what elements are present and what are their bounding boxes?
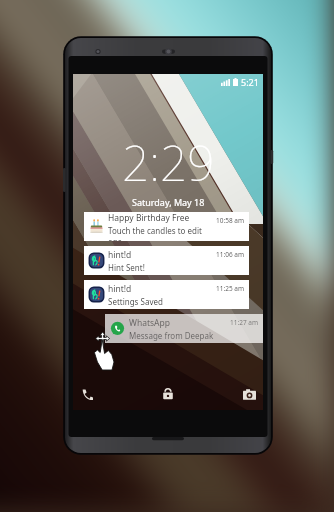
staticText: Saturday, May 18: [132, 196, 205, 208]
staticText: 11:06 am: [216, 250, 245, 259]
button[interactable]: Happy Birthday Free: [84, 212, 249, 241]
button[interactable]: Camera: [240, 385, 258, 403]
staticText: 5:21: [241, 76, 259, 88]
staticText: Happy Birthday Free: [108, 212, 190, 224]
button[interactable]: hint!d: [84, 280, 249, 309]
staticText: Touch the candles to edit age: [108, 225, 216, 241]
staticText: Settings Saved: [108, 296, 163, 307]
staticText: Message from Deepak: [129, 330, 214, 341]
staticText: 2:29: [122, 130, 215, 195]
staticText: hint!d: [108, 283, 132, 295]
staticText: Hint Sent!: [108, 262, 145, 273]
staticText: 11:27 am: [230, 318, 259, 327]
button[interactable]: Unlock: [159, 385, 177, 403]
staticText: WhatsApp: [129, 317, 170, 329]
staticText: 11:25 am: [216, 284, 245, 293]
button[interactable]: Phone: [78, 385, 96, 403]
button[interactable]: hint!d: [84, 246, 249, 275]
staticText: hint!d: [108, 249, 132, 261]
button[interactable]: WhatsApp: [105, 314, 263, 343]
staticText: 10:58 am: [216, 216, 245, 225]
